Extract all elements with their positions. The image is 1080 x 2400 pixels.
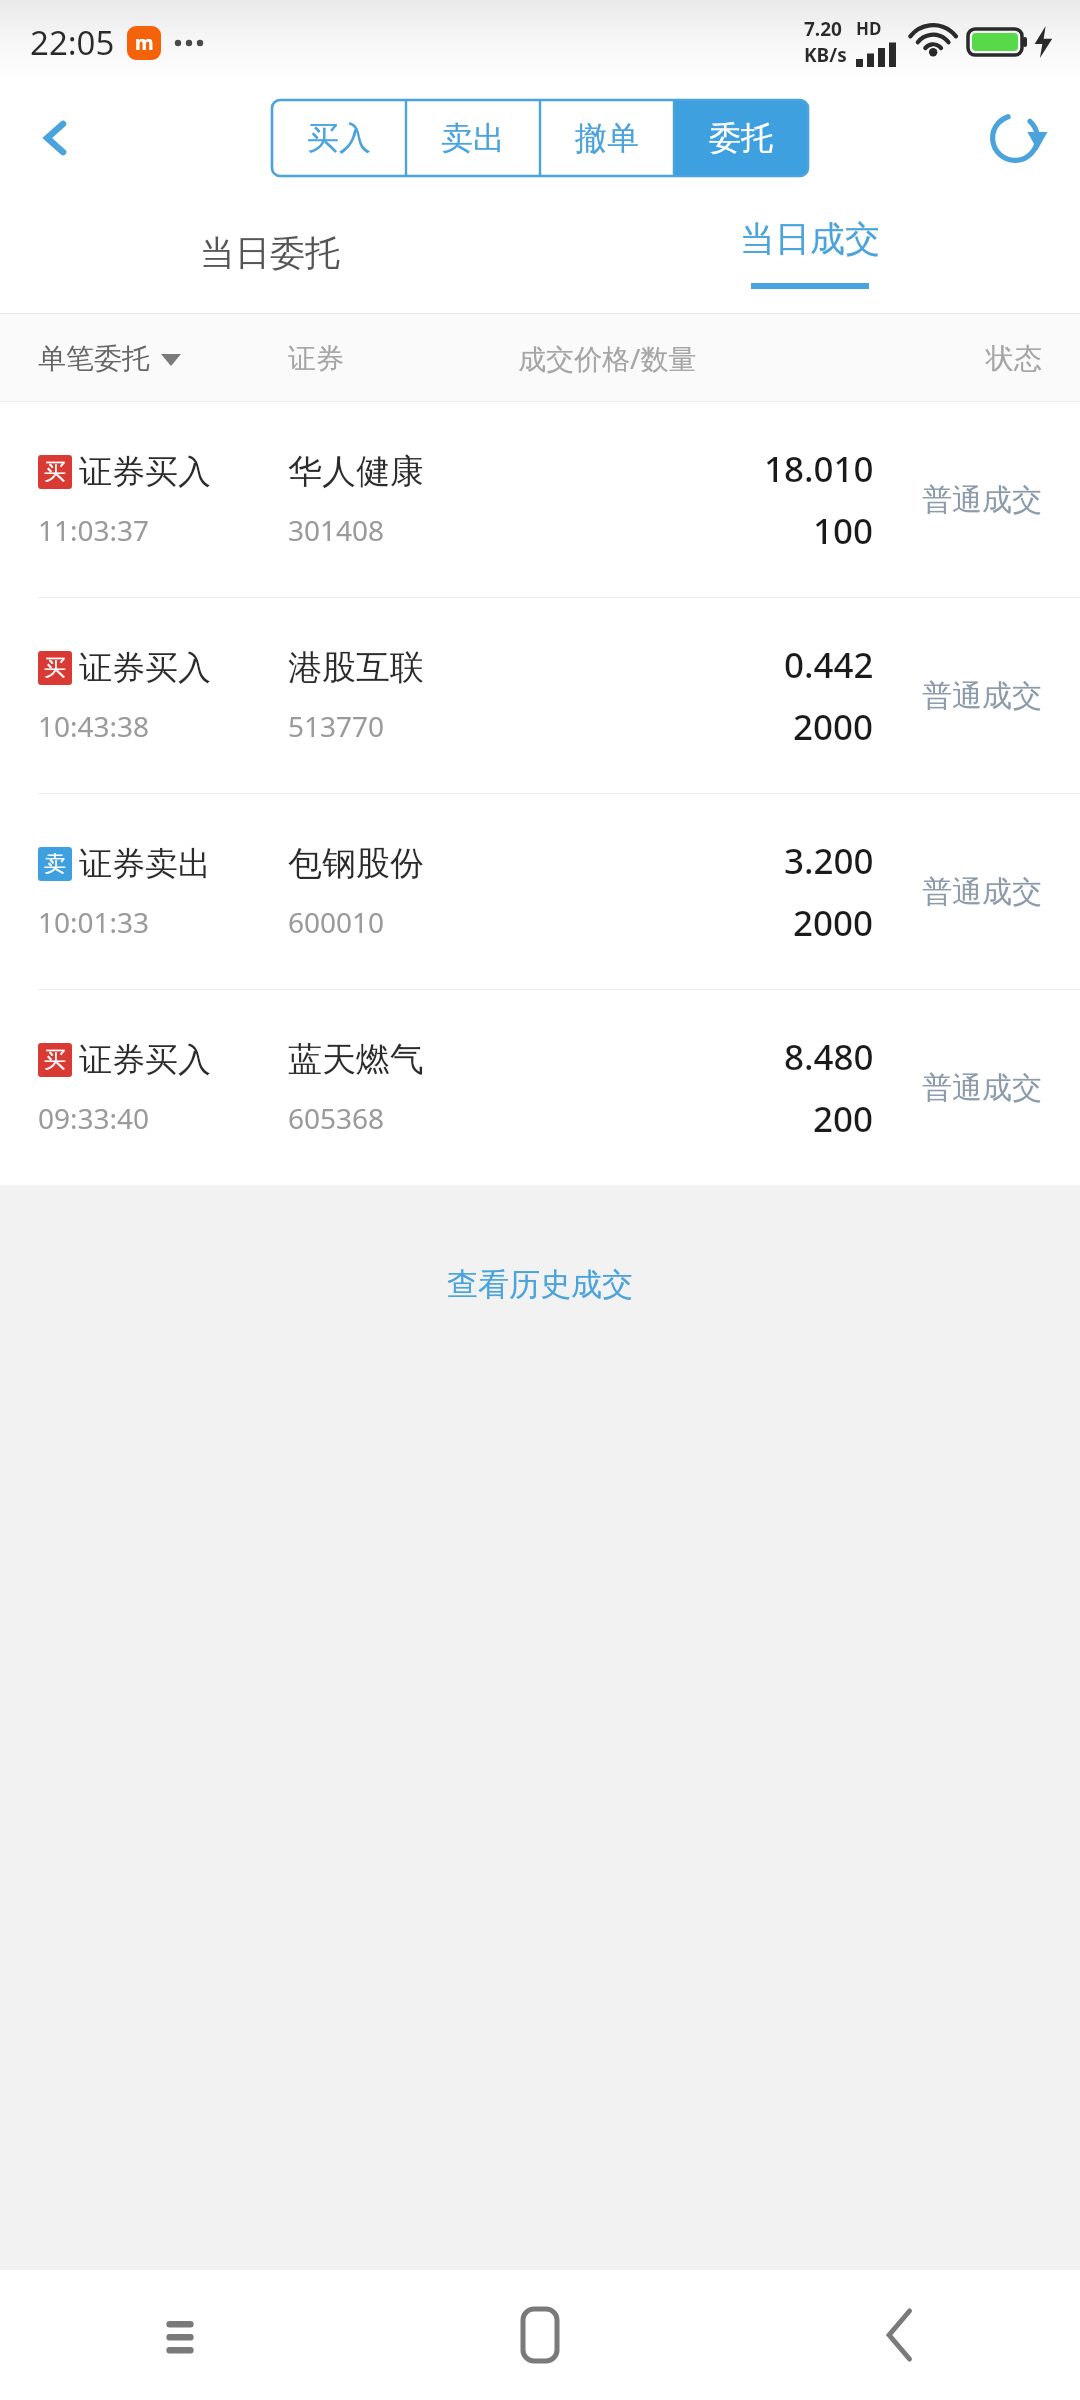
staticText: 普通成交 <box>922 1069 1042 1107</box>
staticText: 10:01:33 <box>38 903 150 941</box>
staticText: 普通成交 <box>922 873 1042 911</box>
button[interactable]: 委托 <box>674 100 808 176</box>
button[interactable]: 撤单 <box>540 100 674 176</box>
staticText: 2000 <box>793 899 874 947</box>
staticText: 513770 <box>288 707 385 745</box>
staticText: 普通成交 <box>922 481 1042 519</box>
staticText: 买 <box>44 1046 66 1074</box>
staticText: 买 <box>44 458 66 486</box>
staticText: 证券 <box>288 341 518 376</box>
staticText: 成交价格/数量 <box>518 339 922 377</box>
staticText: m <box>135 30 154 56</box>
staticText: 委托 <box>709 118 773 158</box>
staticText: 卖 <box>44 850 66 878</box>
staticText: 200 <box>813 1095 874 1143</box>
staticText: 22:05 <box>30 20 115 65</box>
button[interactable]: Back <box>720 2270 1080 2400</box>
staticText: 买 <box>44 654 66 682</box>
button[interactable]: 买 <box>0 990 1080 1185</box>
staticText: 包钢股份 <box>288 842 424 885</box>
staticText: 证券买入 <box>79 1039 211 1081</box>
button[interactable]: 查看历史成交 <box>423 1255 657 1314</box>
staticText: 2000 <box>793 703 874 751</box>
staticText: 7.20 <box>804 16 842 42</box>
button[interactable]: 当日委托 <box>0 192 540 314</box>
staticText: 600010 <box>288 903 385 941</box>
button[interactable]: Back <box>14 96 98 180</box>
staticText: 证券卖出 <box>79 843 211 885</box>
staticText: KB/s <box>804 42 847 68</box>
staticText: 华人健康 <box>288 450 424 493</box>
button[interactable]: 当日成交 <box>540 192 1080 314</box>
staticText: 查看历史成交 <box>447 1265 633 1304</box>
button[interactable]: 买 <box>0 598 1080 793</box>
staticText: 09:33:40 <box>38 1099 150 1137</box>
staticText: 0.442 <box>784 641 874 689</box>
staticText: 证券买入 <box>79 647 211 689</box>
button[interactable]: 买 <box>0 402 1080 597</box>
staticText: 8.480 <box>784 1033 874 1081</box>
staticText: 301408 <box>288 511 385 549</box>
staticText: 10:43:38 <box>38 707 150 745</box>
staticText: 撤单 <box>575 118 639 158</box>
staticText: 当日成交 <box>740 217 880 261</box>
button[interactable]: 卖出 <box>406 100 540 176</box>
button[interactable]: Refresh <box>972 95 1058 181</box>
staticText: 买入 <box>307 118 371 158</box>
staticText: 当日委托 <box>200 231 340 275</box>
button[interactable]: 卖 <box>0 794 1080 989</box>
staticText: 普通成交 <box>922 677 1042 715</box>
staticText: 605368 <box>288 1099 385 1137</box>
staticText: 单笔委托 <box>38 341 150 376</box>
staticText: 蓝天燃气 <box>288 1038 424 1081</box>
staticText: 3.200 <box>784 837 874 885</box>
button[interactable]: Home <box>360 2270 720 2400</box>
staticText: 卖出 <box>441 118 505 158</box>
staticText: 11:03:37 <box>38 511 150 549</box>
staticText: 状态 <box>922 341 1042 376</box>
staticText: 100 <box>813 507 874 555</box>
staticText: 证券买入 <box>79 451 211 493</box>
staticText: 18.010 <box>764 445 874 493</box>
staticText: HD <box>856 17 882 40</box>
button[interactable]: 买入 <box>272 100 406 176</box>
staticText: 港股互联 <box>288 646 424 689</box>
button[interactable]: Recent apps <box>0 2270 360 2400</box>
button[interactable]: 单笔委托 <box>38 341 288 376</box>
